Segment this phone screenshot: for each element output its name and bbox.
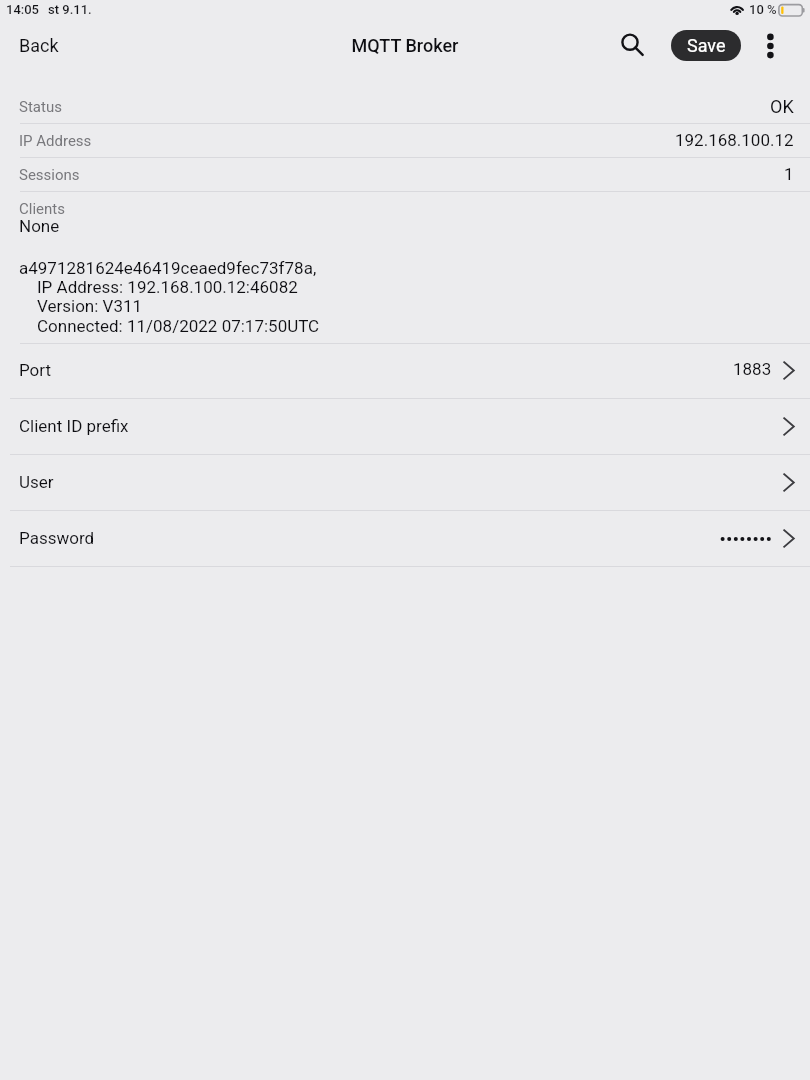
staticText: Status: [19, 98, 62, 116]
staticText: 14:05: [6, 2, 39, 17]
staticText: Sessions: [19, 166, 80, 184]
button[interactable]: Sessions: [0, 158, 810, 191]
button[interactable]: Port: [0, 343, 810, 398]
staticText: 1883: [733, 359, 772, 379]
button[interactable]: More options: [752, 28, 788, 64]
staticText: User: [19, 472, 54, 492]
staticText: Client ID prefix: [19, 416, 129, 436]
button[interactable]: Save: [671, 30, 741, 61]
staticText: a4971281624e46419ceaed9fec73f78a,: [19, 258, 317, 278]
staticText: MQTT Broker: [0, 35, 810, 56]
button[interactable]: Search: [608, 20, 652, 64]
button[interactable]: Back: [6, 28, 72, 62]
staticText: None: [19, 216, 60, 236]
staticText: Back: [19, 35, 59, 56]
staticText: Save: [687, 35, 726, 56]
staticText: 192.168.100.12: [675, 130, 794, 150]
button[interactable]: Password: [0, 510, 810, 566]
staticText: Password: [19, 528, 95, 548]
button[interactable]: User: [0, 454, 810, 510]
staticText: st 9.11.: [48, 2, 92, 17]
staticText: 1: [784, 164, 794, 184]
staticText: IP Address: [19, 132, 92, 150]
staticText: Port: [19, 360, 52, 380]
staticText: 10 %: [749, 2, 777, 17]
button[interactable]: IP Address: [0, 124, 810, 157]
button[interactable]: Client ID prefix: [0, 398, 810, 454]
staticText: IP Address: 192.168.100.12:46082 Version…: [37, 277, 320, 337]
staticText: OK: [770, 96, 794, 117]
button[interactable]: Status: [0, 89, 810, 123]
staticText: Clients: [19, 200, 65, 218]
